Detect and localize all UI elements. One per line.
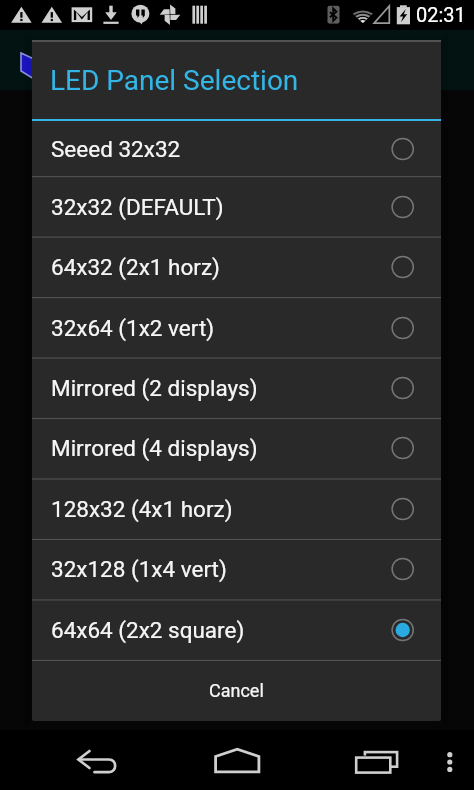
staticText: LED Panel Selection [50, 64, 299, 97]
button[interactable]: Mirrored (4 displays) [32, 418, 441, 478]
button[interactable]: 32x32 (DEFAULT) [32, 177, 441, 237]
button[interactable]: More options [432, 730, 474, 790]
button[interactable]: Cancel [32, 661, 441, 720]
button[interactable]: 64x32 (2x1 horz) [32, 237, 441, 297]
staticText: 02:31 [416, 3, 466, 26]
button[interactable]: Home [206, 730, 268, 790]
staticText: Mirrored (4 displays) [51, 435, 392, 461]
button[interactable]: 32x128 (1x4 vert) [32, 539, 441, 599]
staticText: 32x128 (1x4 vert) [51, 556, 392, 582]
staticText: 32x32 (DEFAULT) [51, 194, 392, 220]
staticText: 64x32 (2x1 horz) [51, 254, 392, 280]
button[interactable]: Mirrored (2 displays) [32, 358, 441, 418]
staticText: 32x64 (1x2 vert) [51, 315, 392, 341]
button[interactable]: 32x64 (1x2 vert) [32, 298, 441, 358]
staticText: 128x32 (4x1 horz) [51, 496, 392, 522]
button[interactable]: Seeed 32x32 [32, 121, 441, 177]
staticText: Cancel [209, 680, 264, 701]
button[interactable]: Back [68, 730, 130, 790]
button[interactable]: Recents [345, 730, 407, 790]
button[interactable]: 128x32 (4x1 horz) [32, 479, 441, 539]
button[interactable]: 64x64 (2x2 square) [32, 600, 441, 660]
staticText: Seeed 32x32 [51, 136, 392, 162]
staticText: Mirrored (2 displays) [51, 375, 392, 401]
staticText: 64x64 (2x2 square) [51, 617, 392, 643]
